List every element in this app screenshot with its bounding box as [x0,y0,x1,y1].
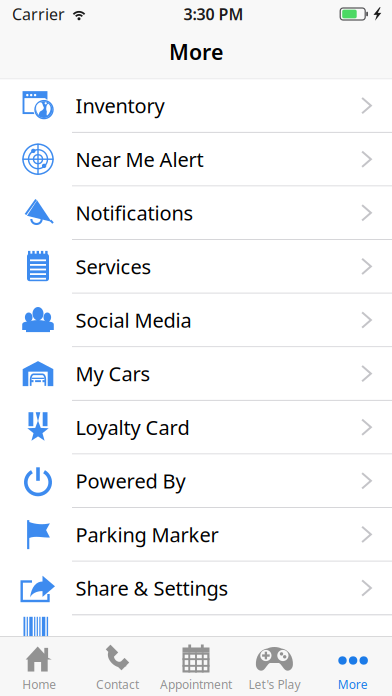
staticText: Inventory [75,92,164,119]
button[interactable]: Loyalty Card [0,401,392,454]
staticText: Parking Marker [75,521,218,548]
button[interactable]: Inventory [0,79,392,133]
button[interactable]: My Cars [0,347,392,401]
button[interactable]: Social Media [0,294,392,347]
staticText: Near Me Alert [75,146,203,172]
staticText: Let's Play [248,676,300,692]
staticText: More [338,676,368,692]
staticText: Appointment [160,676,232,692]
button[interactable]: Powered By [0,454,392,508]
button[interactable]: More [314,636,392,696]
staticText: Home [22,676,56,692]
staticText: Loyalty Card [75,414,189,440]
staticText: Social Media [75,307,191,333]
button[interactable]: Near Me Alert [0,133,392,186]
button[interactable]: Share & Settings [0,562,392,615]
button[interactable]: Appointment [157,636,235,696]
staticText: Carrier [12,3,65,25]
button[interactable]: Parking Marker [0,508,392,562]
button[interactable]: Services [0,240,392,294]
staticText: More [169,37,223,66]
staticText: My Cars [75,360,150,387]
staticText: Contact [96,676,139,692]
staticText: Notifications [75,199,193,226]
button[interactable]: Let's Play [235,636,314,696]
button[interactable]: Contact [78,636,157,696]
button[interactable]: Home [0,636,78,696]
staticText: 3:30 PM [184,3,244,25]
staticText: Powered By [75,467,185,494]
staticText: Services [75,253,151,280]
staticText: Share & Settings [75,575,228,601]
button[interactable]: Notifications [0,186,392,240]
